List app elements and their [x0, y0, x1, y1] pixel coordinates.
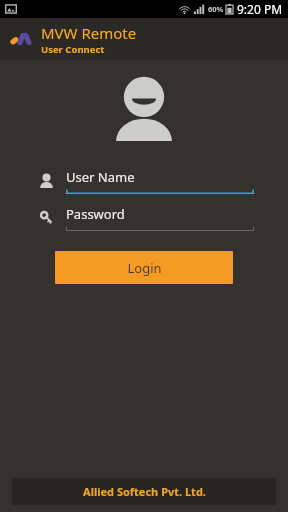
staticText: Password: [66, 205, 125, 223]
button[interactable]: Password field: [36, 202, 254, 231]
staticText: Login: [127, 259, 162, 277]
button[interactable]: Allied Softech Pvt. Ltd.: [12, 478, 276, 505]
staticText: User Connect: [41, 43, 105, 56]
staticText: 60%: [208, 4, 224, 14]
staticText: Allied Softech Pvt. Ltd.: [83, 484, 206, 499]
staticText: User Name: [66, 168, 135, 186]
staticText: 9:20 PM: [237, 1, 283, 17]
button[interactable]: Login: [55, 251, 233, 284]
staticText: MVW Remote: [41, 23, 137, 43]
button[interactable]: User name field: [36, 165, 254, 194]
